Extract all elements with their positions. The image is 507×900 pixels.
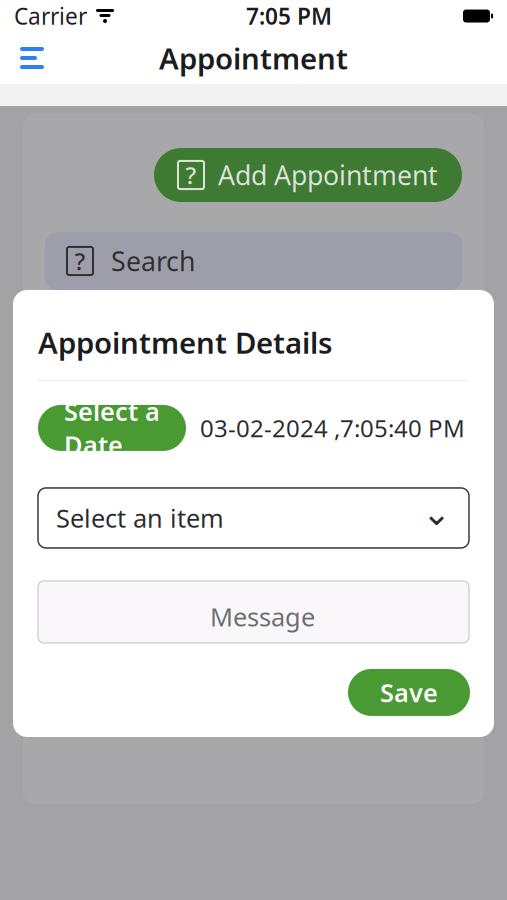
staticText: Appointment <box>159 38 348 77</box>
staticText: Search <box>111 243 195 279</box>
button[interactable]: ? <box>154 148 462 202</box>
staticText: Select an item <box>56 501 224 535</box>
staticText: Carrier <box>14 1 87 31</box>
staticText: Save <box>380 676 438 709</box>
button[interactable]: Save <box>348 669 470 716</box>
staticText: 03-02-2024 ,7:05:40 PM <box>200 412 465 444</box>
staticText: Appointment Details <box>38 323 332 362</box>
button[interactable]: ? <box>45 232 462 290</box>
staticText: Message <box>210 600 315 634</box>
button[interactable]: Select a Date <box>38 405 186 451</box>
staticText: ? <box>74 245 85 277</box>
button[interactable]: Menu <box>9 35 55 81</box>
staticText: ⌄ <box>422 493 451 533</box>
staticText: 7:05 PM <box>246 1 332 31</box>
button[interactable]: Message <box>38 581 469 643</box>
button[interactable]: Select an item <box>38 488 469 548</box>
staticText: Select a Date <box>64 394 160 462</box>
staticText: Add Appointment <box>218 157 438 193</box>
staticText: ? <box>185 159 196 191</box>
